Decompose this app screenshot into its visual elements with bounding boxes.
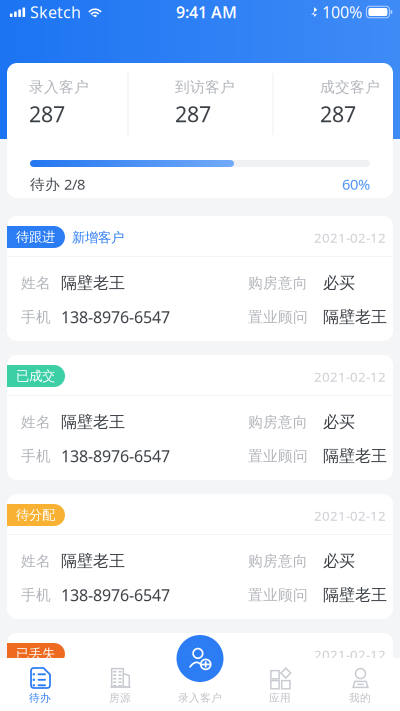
- staticText: 138-8976-6547: [61, 584, 170, 606]
- staticText: 姓名: [21, 413, 51, 431]
- staticText: 必买: [323, 690, 355, 710]
- button[interactable]: 待分配: [7, 494, 393, 619]
- button[interactable]: 我的: [320, 658, 400, 711]
- staticText: 房源: [109, 691, 131, 704]
- staticText: 我的: [349, 691, 371, 704]
- button[interactable]: 已丢失: [7, 633, 393, 711]
- staticText: 60%: [342, 174, 370, 194]
- staticText: 隔壁老王: [323, 307, 387, 327]
- staticText: 待办 2/8: [30, 174, 85, 194]
- staticText: 录入客户: [29, 78, 89, 96]
- staticText: 138-8976-6547: [61, 445, 170, 467]
- staticText: 录入客户: [178, 691, 222, 704]
- staticText: 购房意向: [248, 691, 308, 709]
- staticText: 姓名: [21, 274, 51, 292]
- staticText: 138-8976-6547: [61, 306, 170, 328]
- staticText: 2021-02-12: [314, 507, 386, 524]
- staticText: 置业顾问: [248, 308, 308, 326]
- staticText: 姓名: [21, 691, 51, 709]
- staticText: 待跟进: [16, 229, 55, 245]
- staticText: 287: [320, 100, 356, 128]
- staticText: 必买: [323, 273, 355, 293]
- staticText: 隔壁老王: [61, 412, 125, 432]
- staticText: 隔壁老王: [323, 585, 387, 605]
- staticText: 到访客户: [175, 78, 235, 96]
- staticText: 手机: [21, 447, 51, 465]
- staticText: 手机: [21, 308, 51, 326]
- staticText: Sketch: [30, 1, 81, 23]
- staticText: 置业顾问: [248, 447, 308, 465]
- staticText: 购房意向: [248, 274, 308, 292]
- button[interactable]: 录入客户: [176, 635, 223, 682]
- staticText: 2021-02-12: [314, 368, 386, 385]
- button[interactable]: 录入客户: [160, 658, 240, 711]
- staticText: 已成交: [16, 368, 55, 384]
- staticText: 隔壁老王: [61, 690, 125, 710]
- button[interactable]: 房源: [80, 658, 160, 711]
- staticText: 应用: [269, 691, 291, 704]
- staticText: 隔壁老王: [61, 551, 125, 571]
- staticText: 手机: [21, 586, 51, 604]
- staticText: 待分配: [16, 507, 55, 523]
- button[interactable]: 待跟进: [7, 216, 393, 341]
- staticText: 已丢失: [16, 646, 55, 662]
- staticText: 287: [29, 100, 65, 128]
- staticText: 287: [175, 100, 211, 128]
- staticText: 购房意向: [248, 552, 308, 570]
- staticText: 必买: [323, 412, 355, 432]
- staticText: 隔壁老王: [61, 273, 125, 293]
- staticText: 9:41 AM: [176, 1, 237, 23]
- staticText: 购房意向: [248, 413, 308, 431]
- button[interactable]: 应用: [240, 658, 320, 711]
- staticText: 2021-02-12: [314, 646, 386, 663]
- button[interactable]: 待办: [0, 658, 80, 711]
- staticText: 必买: [323, 551, 355, 571]
- staticText: 2021-02-12: [314, 229, 386, 246]
- staticText: 新增客户: [72, 229, 124, 246]
- staticText: 姓名: [21, 552, 51, 570]
- staticText: 隔壁老王: [323, 446, 387, 466]
- button[interactable]: 已成交: [7, 355, 393, 480]
- staticText: 待办: [29, 691, 51, 704]
- staticText: 置业顾问: [248, 586, 308, 604]
- staticText: 成交客户: [320, 78, 380, 96]
- staticText: 100%: [322, 1, 362, 23]
